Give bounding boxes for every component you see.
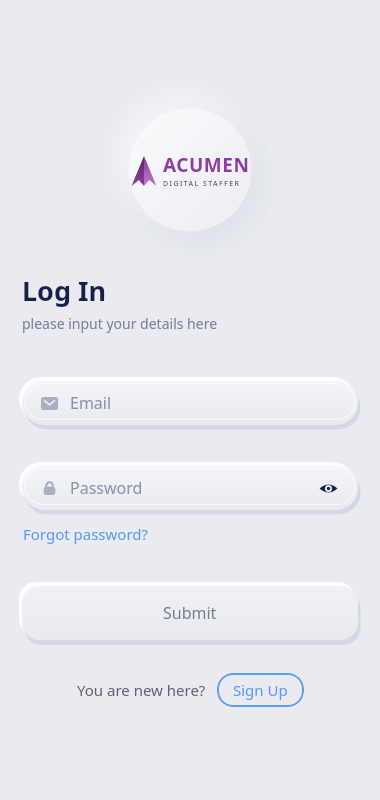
- staticText: Password: [70, 477, 143, 499]
- staticText: You are new here?: [77, 680, 206, 700]
- staticText: please input your details here: [22, 314, 218, 333]
- button[interactable]: Show password: [314, 474, 342, 502]
- button[interactable]: Email: [22, 381, 358, 425]
- button[interactable]: Submit: [22, 586, 358, 640]
- staticText: Email: [70, 392, 112, 414]
- staticText: DIGITAL STAFFER: [163, 179, 241, 189]
- button[interactable]: Sign Up: [217, 673, 304, 707]
- staticText: Log In: [22, 272, 107, 309]
- staticText: Forgot password?: [23, 524, 149, 544]
- staticText: ACUMEN: [163, 152, 250, 178]
- staticText: Submit: [163, 602, 217, 624]
- button[interactable]: Password: [22, 466, 358, 510]
- staticText: Sign Up: [233, 680, 288, 700]
- button[interactable]: Forgot password?: [18, 521, 154, 547]
